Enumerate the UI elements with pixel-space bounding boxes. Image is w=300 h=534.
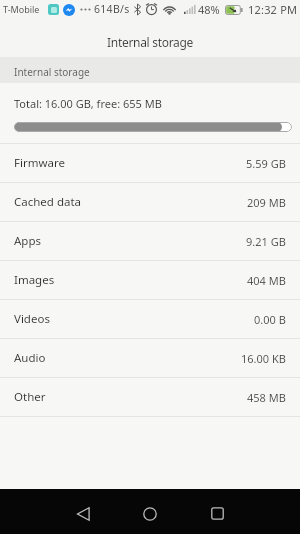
staticText: Cached data: [14, 194, 82, 210]
staticText: 458 MB: [247, 390, 286, 405]
staticText: Total: 16.00 GB, free: 655 MB: [14, 96, 162, 111]
button[interactable]: Images: [0, 261, 300, 300]
staticText: Internal storage: [107, 34, 194, 50]
button[interactable]: [123, 489, 177, 534]
staticText: Other: [14, 389, 46, 405]
button[interactable]: Firmware: [0, 144, 300, 183]
button[interactable]: Videos: [0, 300, 300, 339]
staticText: 5.59 GB: [246, 156, 286, 171]
button[interactable]: [56, 489, 110, 534]
staticText: 48%: [198, 2, 220, 17]
staticText: 209 MB: [247, 195, 286, 210]
staticText: 12:32 PM: [248, 2, 298, 17]
staticText: Firmware: [14, 155, 65, 171]
button[interactable]: [190, 489, 244, 534]
staticText: Images: [14, 272, 55, 288]
button[interactable]: Cached data: [0, 183, 300, 222]
staticText: 16.00 KB: [241, 351, 286, 366]
staticText: Apps: [14, 233, 42, 249]
button[interactable]: Other: [0, 378, 300, 417]
staticText: Videos: [14, 311, 50, 327]
staticText: 614B/s: [94, 2, 130, 16]
staticText: 404 MB: [247, 273, 286, 288]
staticText: Audio: [14, 350, 46, 366]
button[interactable]: Audio: [0, 339, 300, 378]
staticText: T-Mobile: [3, 3, 40, 15]
button[interactable]: Apps: [0, 222, 300, 261]
staticText: Internal storage: [14, 65, 90, 79]
staticText: 9.21 GB: [246, 234, 286, 249]
staticText: 0.00 B: [254, 312, 286, 327]
